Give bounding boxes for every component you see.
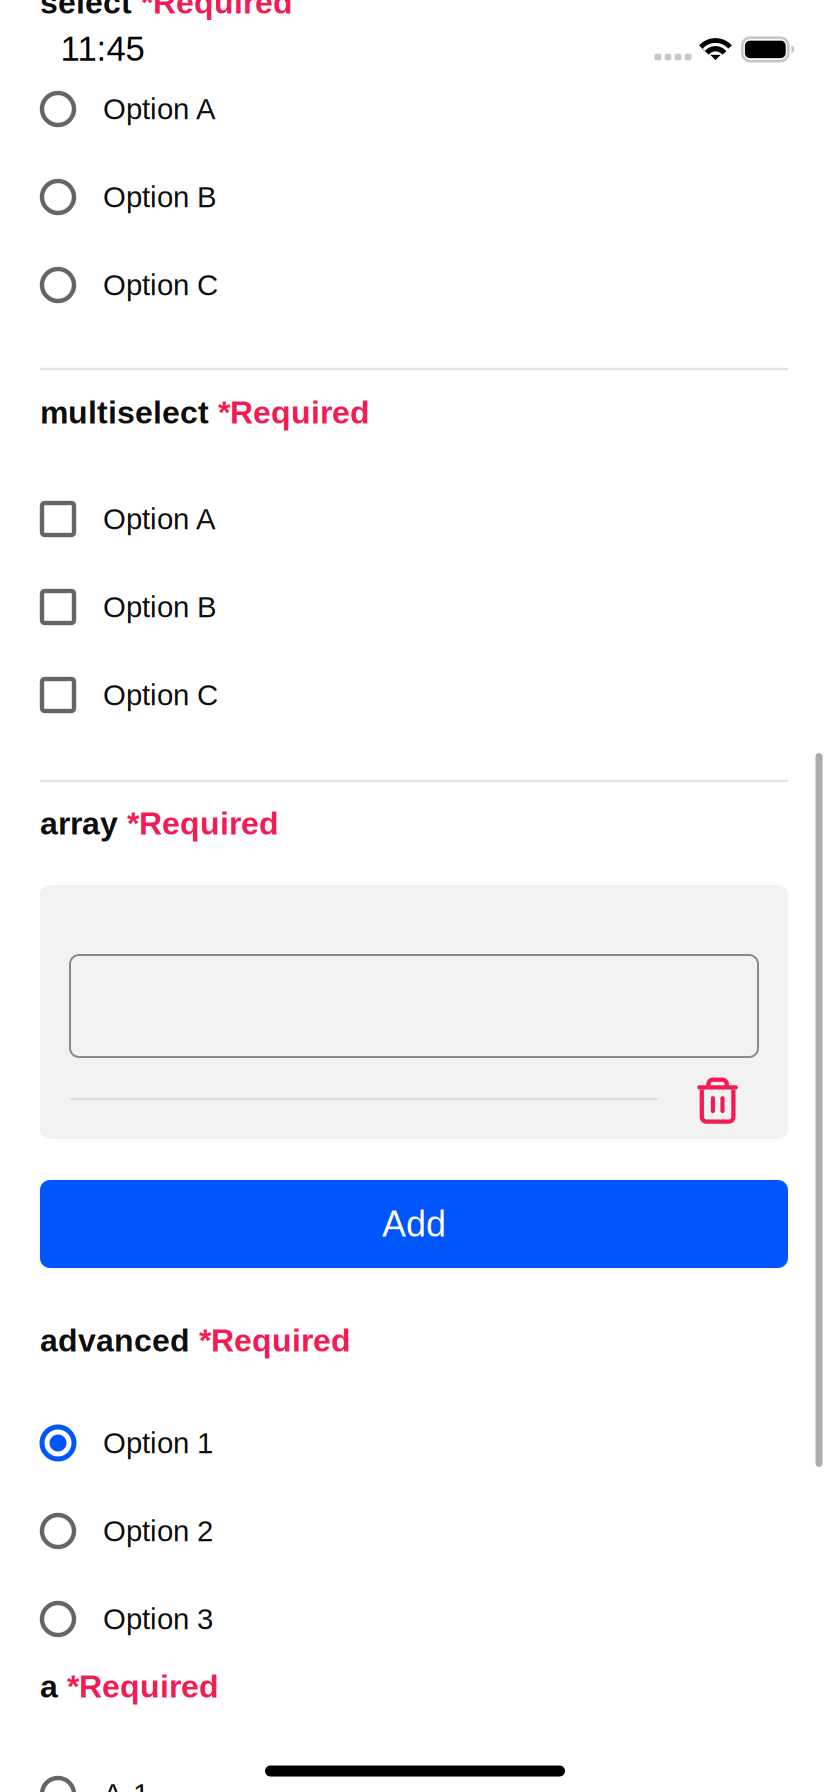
staticText: advanced [40, 1322, 190, 1358]
button[interactable]: Option B [0, 571, 828, 643]
staticText: 11:45 [60, 29, 144, 68]
staticText: Option 2 [103, 1515, 213, 1547]
button[interactable]: Option A [0, 483, 828, 555]
staticText: *Required [190, 1322, 351, 1358]
staticText: array [40, 805, 118, 841]
button[interactable]: Add [40, 1180, 788, 1268]
staticText: Option A [103, 503, 216, 535]
staticText: Option 1 [103, 1427, 213, 1459]
staticText: *Required [209, 394, 370, 430]
button[interactable]: Option C [0, 249, 828, 321]
staticText: multiselect [40, 394, 209, 430]
staticText: Add [382, 1204, 446, 1244]
button[interactable]: A-1 [0, 1758, 828, 1792]
button[interactable]: Delete item [687, 1063, 749, 1135]
staticText: Option B [103, 181, 217, 213]
staticText: select [40, 0, 132, 20]
staticText: A-1 [103, 1778, 149, 1792]
staticText: *Required [132, 0, 293, 20]
staticText: *Required [58, 1668, 219, 1704]
button[interactable]: Option C [0, 659, 828, 731]
staticText: Option B [103, 591, 217, 623]
staticText: Option A [103, 93, 216, 125]
staticText: a [40, 1668, 58, 1704]
staticText: Option 3 [103, 1603, 213, 1635]
button[interactable]: Option B [0, 161, 828, 233]
button[interactable]: Option A [0, 73, 828, 145]
button[interactable]: Option 2 [0, 1495, 828, 1567]
button[interactable]: Option 1 [0, 1407, 828, 1479]
button[interactable]: Option 3 [0, 1583, 828, 1655]
staticText: *Required [118, 805, 279, 841]
staticText: Option C [103, 269, 218, 301]
staticText: Option C [103, 679, 218, 711]
